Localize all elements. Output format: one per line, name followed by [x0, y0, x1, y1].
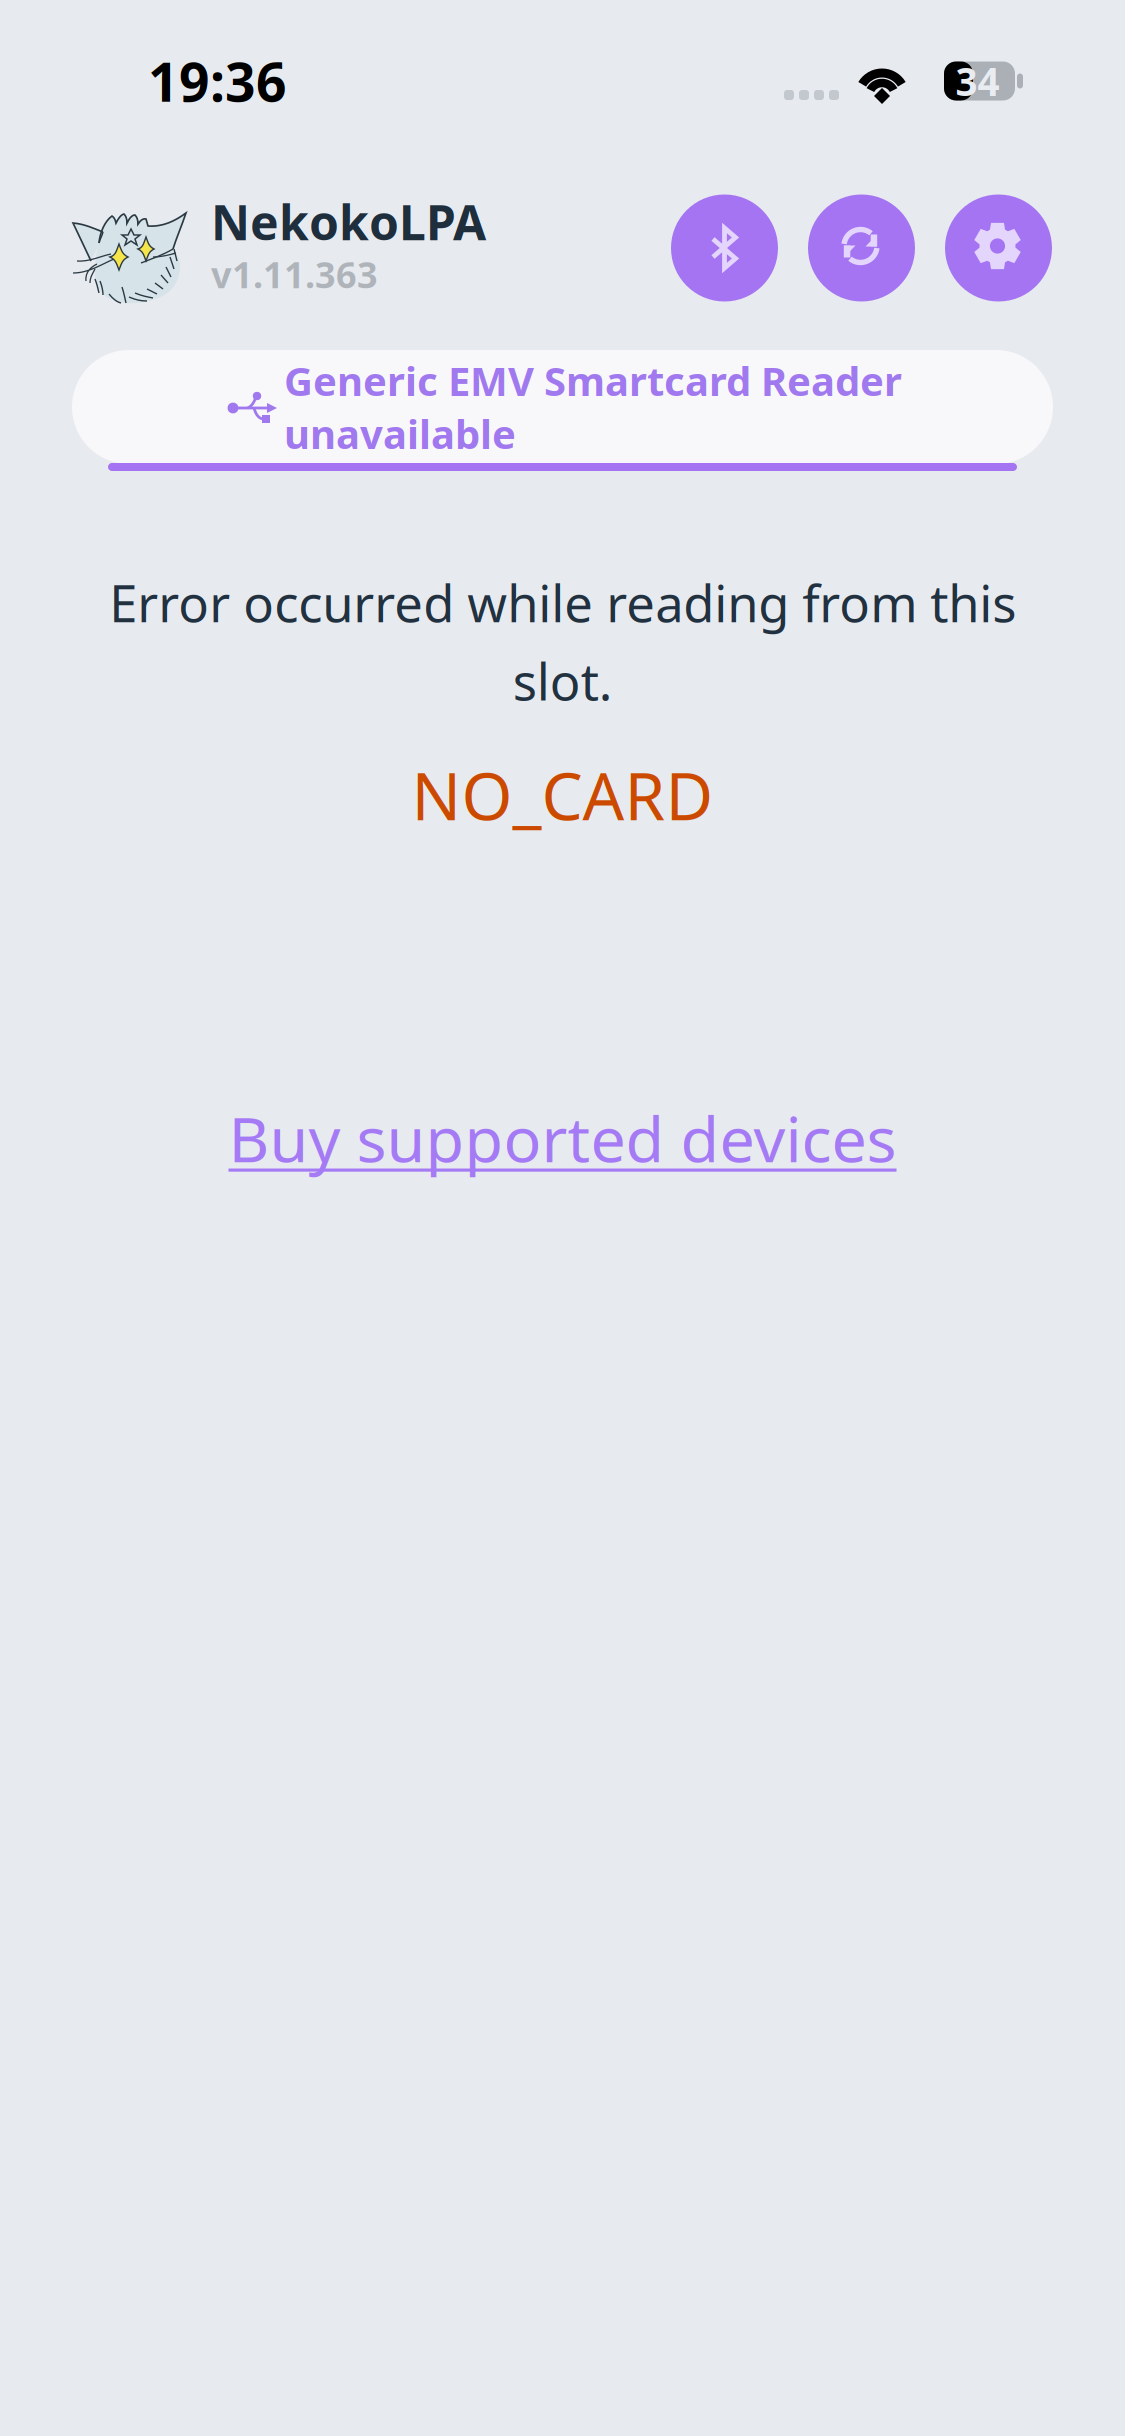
staticText: Buy supported devices — [228, 1096, 896, 1179]
staticText: 19:36 — [148, 46, 287, 116]
button[interactable]: Settings — [945, 194, 1052, 301]
staticText: 34 — [955, 55, 999, 107]
staticText: Error occurred while reading from this s… — [109, 569, 1016, 715]
button[interactable]: Refresh — [808, 194, 915, 301]
staticText: NekokoLPA — [211, 190, 486, 253]
staticText: Generic EMV Smartcard Reader unavailable — [284, 354, 902, 460]
button[interactable]: Buy supported devices — [228, 1096, 896, 1179]
staticText: NO_CARD — [411, 752, 713, 838]
button[interactable]: Bluetooth — [671, 194, 778, 301]
staticText: v1.11.363 — [211, 250, 378, 298]
button[interactable]: Generic EMV Smartcard Reader unavailable — [72, 350, 1053, 471]
